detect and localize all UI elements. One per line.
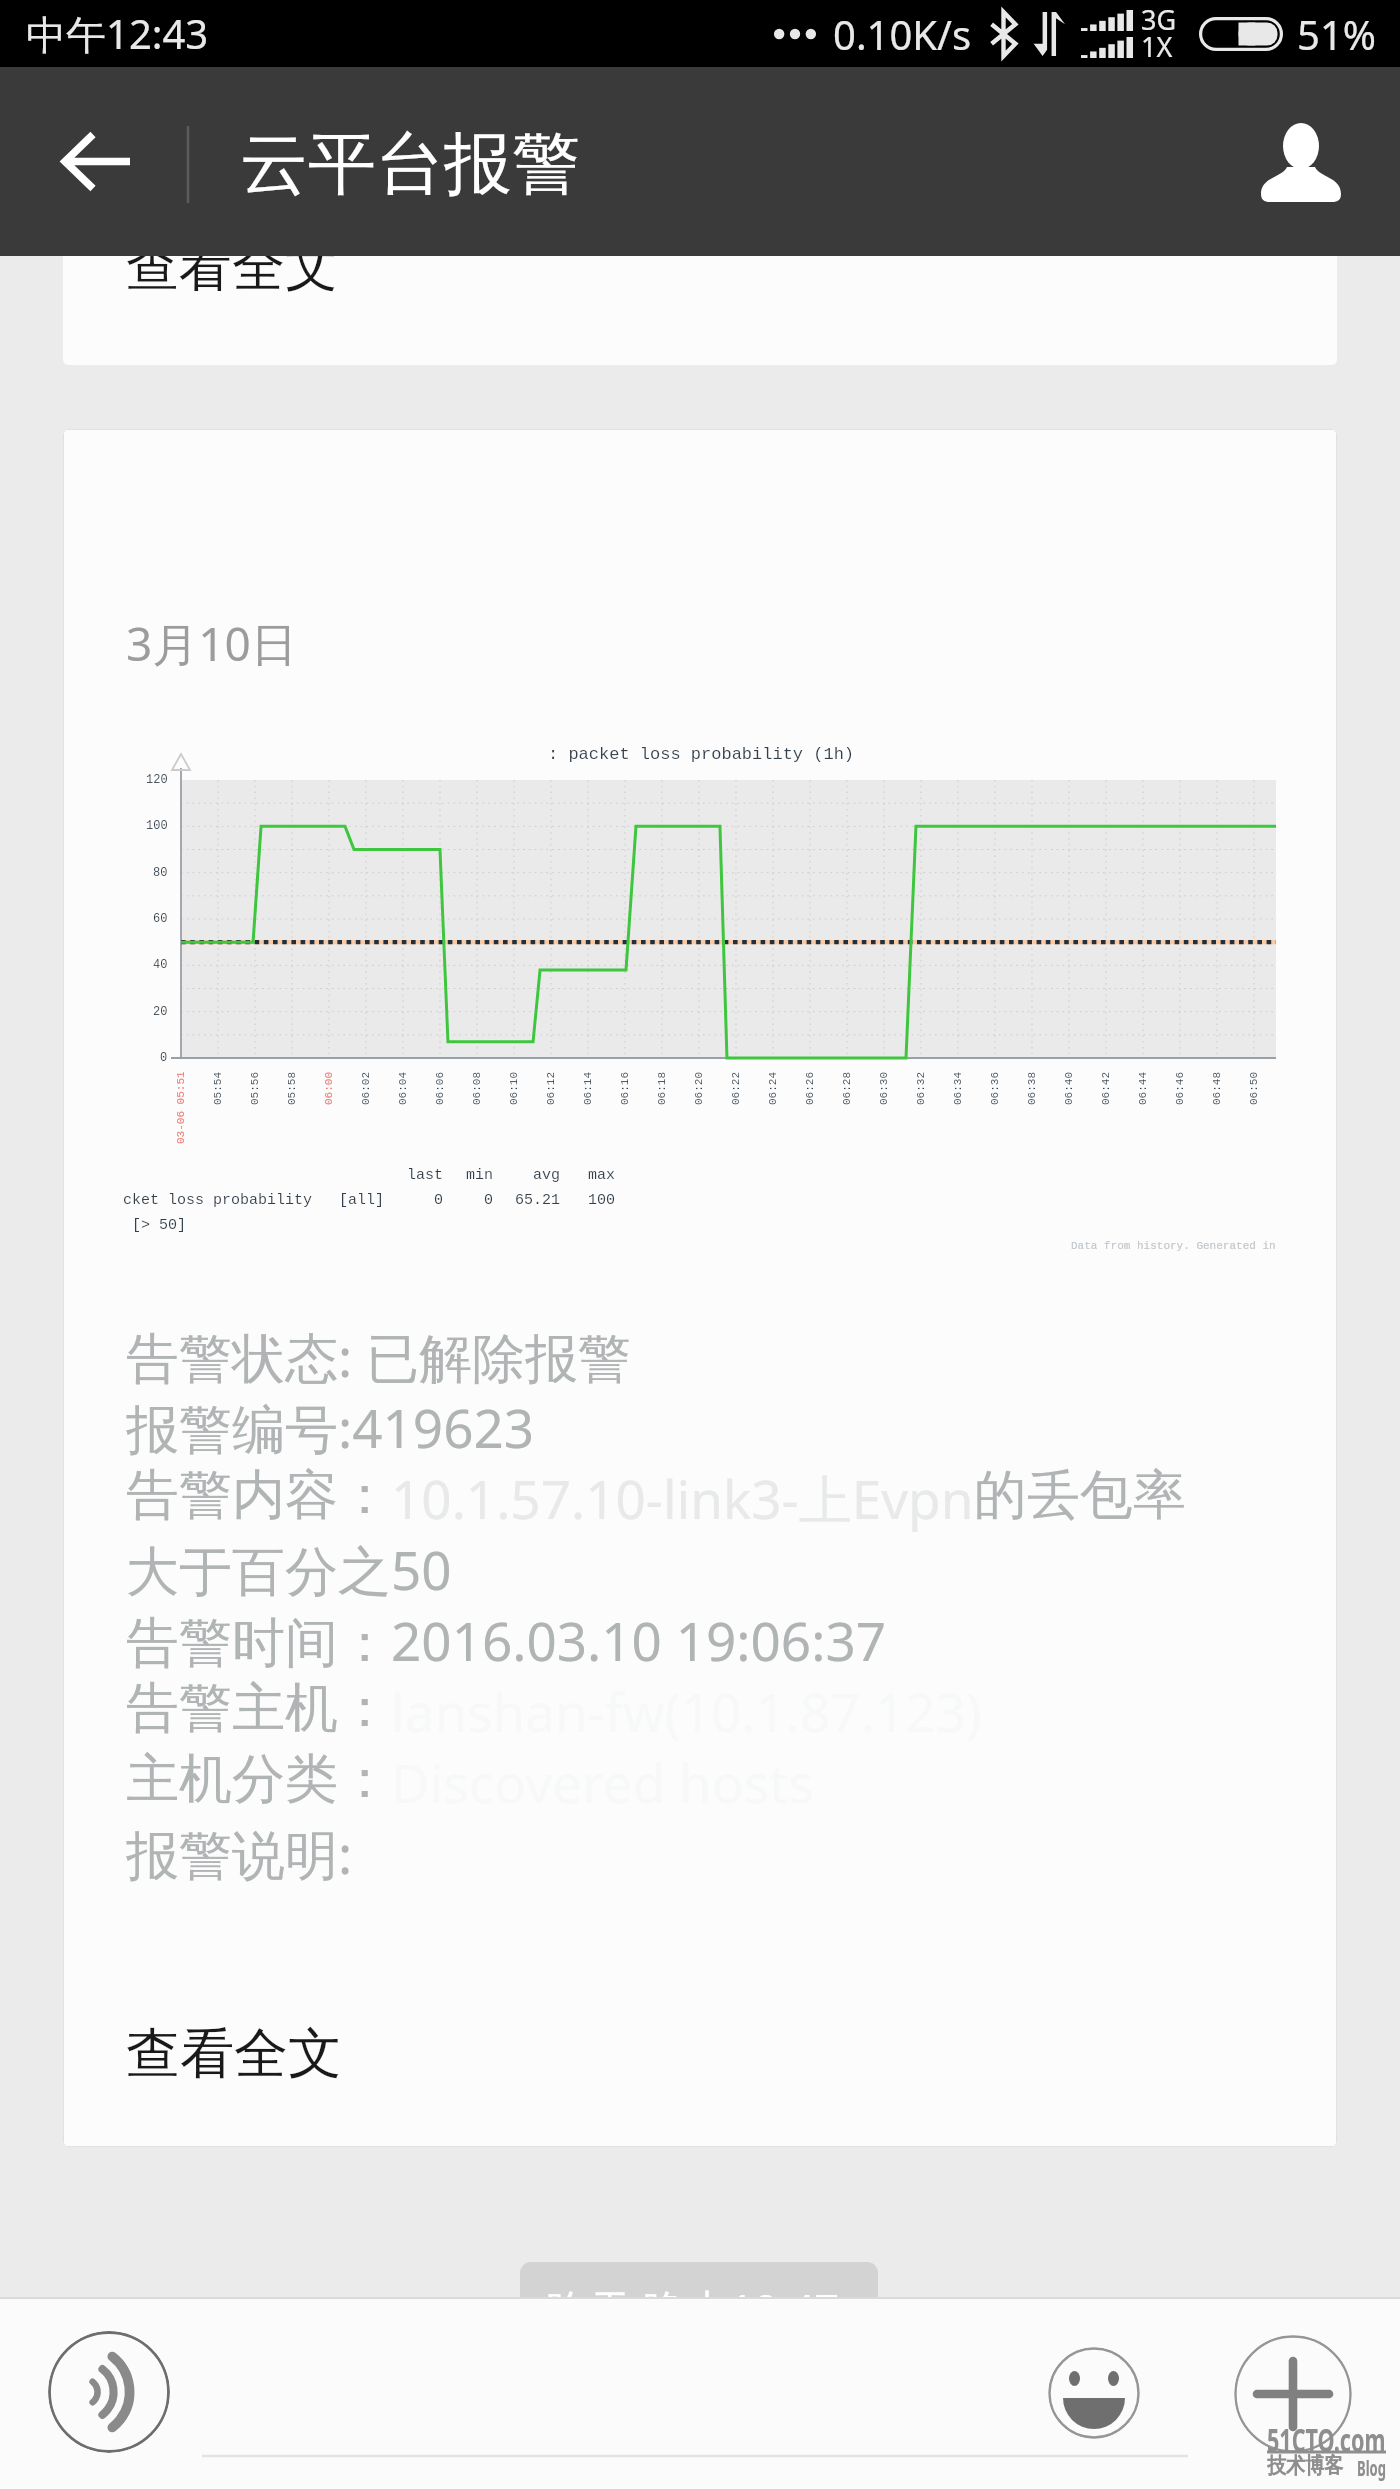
button[interactable]: 查看全文 [126,2020,346,2084]
button[interactable]: 3月10日 [63,429,1337,2147]
staticText: 告警主机： [126,1675,391,1742]
staticText: 报警编号:419623 [126,1391,535,1462]
button[interactable]: Contact profile [1210,67,1400,256]
staticText: 的丢包率 [974,1462,1186,1529]
staticText: 告警时间：2016.03.10 19:06:37 [126,1604,887,1675]
staticText: 云平台报警 [240,122,580,208]
staticText: 中午12:43 [26,6,209,61]
button[interactable]: Voice message [48,2331,170,2453]
button[interactable]: Emoji [1048,2347,1140,2439]
staticText: 0.10K/s [833,7,972,61]
staticText: 查看全文 [126,234,338,296]
staticText: 报警说明: [126,1817,353,1888]
button[interactable]: 昨天 晚上10:47 [546,2280,852,2339]
staticText: 1X [1141,28,1173,65]
staticText: 3月10日 [126,612,297,675]
staticText: 3G [1141,1,1177,38]
button[interactable]: 查看全文 [63,185,1337,365]
staticText: 大于百分之50 [126,1533,452,1604]
staticText: 51% [1297,7,1376,61]
staticText: 主机分类： [126,1746,391,1813]
staticText: 告警状态: 已解除报警 [126,1320,631,1391]
staticText: 告警内容： [126,1462,391,1529]
button[interactable]: 查看全文 [126,234,342,296]
button[interactable]: More options [1234,2335,1352,2453]
staticText: 查看全文 [126,2020,342,2084]
staticText: 10.1.57.10-link3-上Evpn [391,1462,974,1533]
staticText: 昨天 晚上10:47 [546,2280,840,2339]
button[interactable]: Back [0,67,180,256]
